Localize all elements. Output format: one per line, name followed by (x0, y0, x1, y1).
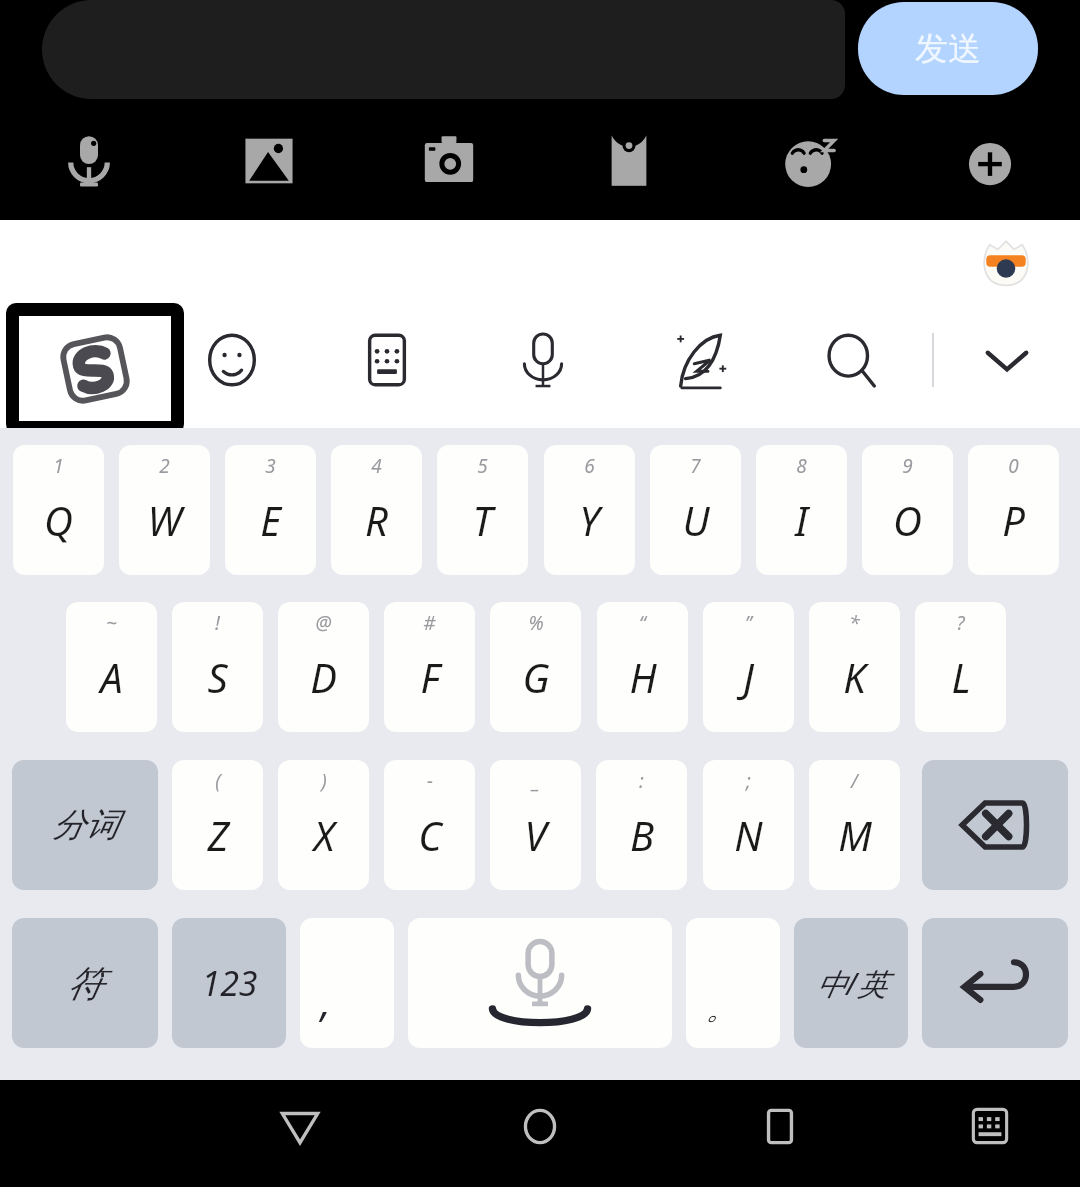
button[interactable]: ” (703, 602, 794, 732)
button[interactable]: : (596, 760, 687, 890)
button[interactable]: 7 (650, 445, 741, 575)
button[interactable]: % (490, 602, 581, 732)
button[interactable]: - (384, 760, 475, 890)
button[interactable]: Sticker (768, 119, 852, 203)
staticText: 分词 (52, 804, 118, 846)
button[interactable]: 2 (119, 445, 210, 575)
button[interactable]: 发送 (858, 2, 1038, 95)
button[interactable]: Sogou input (6, 303, 184, 434)
staticText: ! (215, 610, 220, 636)
button[interactable]: 符 (12, 918, 158, 1048)
button[interactable]: 3 (225, 445, 316, 575)
staticText: 发送 (915, 28, 981, 70)
button[interactable]: ( (172, 760, 263, 890)
button[interactable]: * (809, 602, 900, 732)
staticText: J (743, 650, 754, 704)
staticText: ; (746, 768, 751, 794)
staticText: O (893, 493, 922, 547)
staticText: P (1002, 493, 1025, 547)
button[interactable]: / (809, 760, 900, 890)
staticText: 5 (477, 453, 488, 479)
staticText: I (795, 493, 808, 547)
button[interactable]: Search (812, 320, 892, 400)
button[interactable]: 4 (331, 445, 422, 575)
button[interactable]: 0 (968, 445, 1059, 575)
button[interactable]: ! (172, 602, 263, 732)
staticText: , (320, 974, 331, 1028)
button[interactable]: Mascot (974, 229, 1038, 293)
staticText: 中/英 (816, 963, 887, 1004)
staticText: 2 (159, 453, 170, 479)
staticText: 3 (265, 453, 276, 479)
staticText: X (313, 808, 335, 862)
button[interactable]: 123 (172, 918, 286, 1048)
button[interactable]: 5 (437, 445, 528, 575)
button[interactable]: Backspace (922, 760, 1068, 890)
button[interactable]: Voice message (47, 119, 131, 203)
staticText: D (310, 650, 337, 704)
staticText: W (147, 493, 182, 547)
staticText: C (418, 808, 442, 862)
staticText: G (522, 650, 550, 704)
button[interactable]: Keyboard layout (347, 320, 427, 400)
button[interactable]: Handwriting (658, 320, 738, 400)
button[interactable]: Back (255, 1081, 345, 1171)
button[interactable]: ; (703, 760, 794, 890)
button[interactable]: Space (408, 918, 672, 1048)
staticText: : (639, 768, 644, 794)
button[interactable]: 1 (13, 445, 104, 575)
button[interactable]: , (300, 918, 394, 1048)
button[interactable]: Enter (922, 918, 1068, 1048)
staticText: ~ (106, 610, 117, 636)
button[interactable]: 9 (862, 445, 953, 575)
button[interactable]: 6 (544, 445, 635, 575)
staticText: # (423, 610, 436, 636)
button[interactable]: 。 (686, 918, 780, 1048)
staticText: K (843, 650, 866, 704)
button[interactable]: @ (278, 602, 369, 732)
button[interactable]: ) (278, 760, 369, 890)
button[interactable]: 8 (756, 445, 847, 575)
staticText: ? (956, 610, 965, 636)
staticText: - (427, 768, 433, 794)
button[interactable] (42, 0, 845, 99)
button[interactable]: Hide keyboard (967, 320, 1047, 400)
staticText: E (260, 493, 281, 547)
staticText: / (851, 768, 858, 794)
staticText: Z (207, 808, 229, 862)
staticText: H (629, 650, 657, 704)
staticText: M (838, 808, 872, 862)
button[interactable]: Recents (735, 1081, 825, 1171)
button[interactable]: Emoji (192, 320, 272, 400)
button[interactable]: # (384, 602, 475, 732)
button[interactable]: ? (915, 602, 1006, 732)
staticText: ) (321, 768, 327, 794)
button[interactable]: Home (495, 1081, 585, 1171)
staticText: Y (579, 493, 600, 547)
staticText: B (630, 808, 654, 862)
staticText: 123 (201, 960, 258, 1006)
button[interactable]: Switch keyboard (945, 1081, 1035, 1171)
button[interactable]: Red packet (587, 119, 671, 203)
button[interactable]: “ (597, 602, 688, 732)
button[interactable]: ~ (66, 602, 157, 732)
staticText: V (524, 808, 547, 862)
staticText: ( (215, 768, 221, 794)
staticText: 。 (706, 990, 736, 1028)
staticText: R (365, 493, 388, 547)
staticText: 8 (796, 453, 807, 479)
button[interactable]: More (948, 119, 1032, 203)
staticText: T (472, 493, 493, 547)
button[interactable]: 分词 (12, 760, 158, 890)
staticText: 6 (584, 453, 595, 479)
button[interactable]: Gallery (227, 119, 311, 203)
button[interactable]: Camera (407, 119, 491, 203)
staticText: A (100, 650, 123, 704)
button[interactable]: 中/英 (794, 918, 908, 1048)
staticText: 符 (67, 961, 103, 1006)
button[interactable]: Voice input (503, 320, 583, 400)
staticText: 1 (53, 453, 64, 479)
staticText: S (207, 650, 228, 704)
staticText: N (734, 808, 763, 862)
button[interactable]: _ (490, 760, 581, 890)
